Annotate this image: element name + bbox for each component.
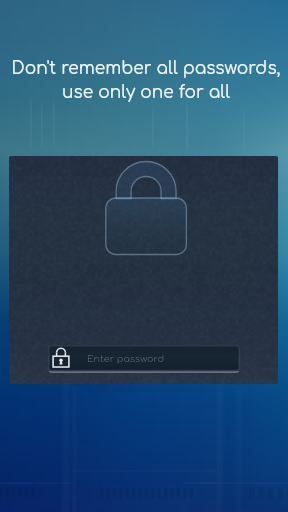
staticText: Don't remember all passwords, use only o… (2, 59, 288, 102)
staticText: Enter password (87, 354, 165, 365)
button[interactable]: Enter password (48, 345, 240, 373)
